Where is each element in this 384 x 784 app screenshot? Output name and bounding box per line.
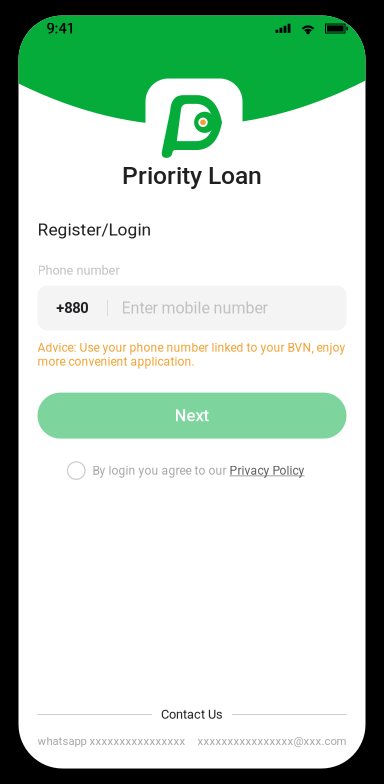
- button[interactable]: Agree to Privacy Policy: [67, 462, 85, 479]
- staticText: whatsapp xxxxxxxxxxxxxxxx: [37, 734, 185, 748]
- staticText: Next: [174, 406, 209, 425]
- button[interactable]: Next: [37, 393, 346, 439]
- staticText: Register/Login: [37, 219, 151, 240]
- staticText: By login you agree to our: [92, 464, 229, 478]
- staticText: Privacy Policy: [229, 464, 304, 478]
- staticText: +880: [56, 299, 88, 317]
- staticText: Enter mobile number: [121, 299, 267, 317]
- staticText: xxxxxxxxxxxxxxxx@xxx.com: [197, 734, 346, 748]
- button[interactable]: Contact Us: [18, 707, 365, 721]
- staticText: Priority Loan: [122, 161, 262, 190]
- staticText: 9:41: [46, 20, 74, 37]
- staticText: Contact Us: [161, 707, 223, 722]
- staticText: Advice: Use your phone number linked to …: [37, 340, 345, 369]
- button[interactable]: Privacy Policy: [229, 464, 304, 478]
- staticText: Phone number: [37, 263, 119, 278]
